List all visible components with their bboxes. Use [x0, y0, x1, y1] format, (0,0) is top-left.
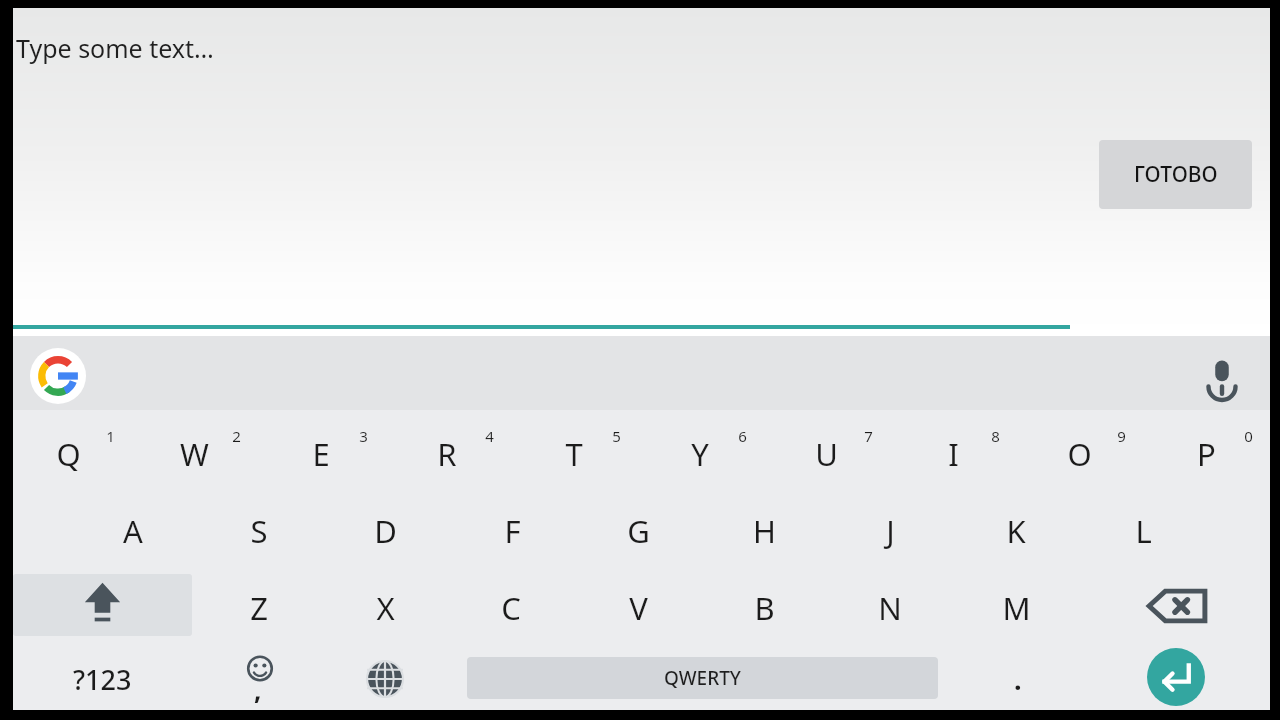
staticText: Y: [691, 433, 709, 475]
button[interactable]: [70, 493, 196, 565]
button[interactable]: [890, 416, 1016, 488]
button[interactable]: Backspace: [1132, 575, 1222, 637]
button[interactable]: QWERTY: [467, 657, 938, 699]
button[interactable]: Enter: [1147, 648, 1205, 706]
button[interactable]: [322, 493, 448, 565]
staticText: H: [753, 510, 776, 552]
staticText: 7: [864, 426, 873, 446]
staticText: T: [565, 433, 583, 475]
button[interactable]: [449, 493, 575, 565]
staticText: K: [1006, 510, 1026, 552]
button[interactable]: [701, 493, 827, 565]
staticText: Z: [250, 587, 268, 629]
staticText: Type some text…: [16, 31, 214, 65]
staticText: 4: [485, 426, 494, 446]
staticText: 5: [612, 426, 621, 446]
staticText: Q: [56, 433, 81, 475]
staticText: B: [754, 587, 775, 629]
button[interactable]: [5, 416, 131, 488]
staticText: W: [180, 433, 209, 475]
staticText: N: [878, 587, 902, 629]
staticText: 2: [232, 426, 241, 446]
button[interactable]: [1143, 416, 1269, 488]
staticText: L: [1135, 510, 1152, 552]
button[interactable]: [258, 416, 384, 488]
staticText: D: [374, 510, 397, 552]
staticText: 6: [738, 426, 747, 446]
staticText: J: [886, 510, 895, 552]
button[interactable]: [575, 493, 701, 565]
staticText: U: [815, 433, 838, 475]
button[interactable]: [13, 8, 1270, 336]
button[interactable]: [384, 416, 510, 488]
staticText: F: [504, 510, 521, 552]
button[interactable]: [1016, 416, 1142, 488]
staticText: X: [376, 587, 395, 629]
button[interactable]: [953, 570, 1079, 642]
button[interactable]: [511, 416, 637, 488]
staticText: M: [1002, 587, 1031, 629]
button[interactable]: [448, 570, 574, 642]
staticText: V: [629, 587, 648, 629]
button[interactable]: [953, 493, 1079, 565]
staticText: ,: [254, 672, 262, 707]
button[interactable]: [701, 570, 827, 642]
button[interactable]: Shift: [13, 574, 192, 636]
button[interactable]: Voice input: [1196, 350, 1248, 402]
staticText: I: [948, 433, 959, 475]
button[interactable]: .: [978, 648, 1058, 710]
staticText: 1: [106, 426, 115, 446]
staticText: O: [1067, 433, 1092, 475]
button[interactable]: [322, 570, 448, 642]
staticText: G: [627, 510, 650, 552]
button[interactable]: [196, 493, 322, 565]
button[interactable]: Google: [30, 348, 86, 404]
button[interactable]: Emoji: [210, 648, 310, 710]
staticText: A: [123, 510, 143, 552]
button[interactable]: ГОТОВО: [1099, 140, 1252, 209]
staticText: R: [437, 433, 457, 475]
staticText: E: [312, 433, 330, 475]
button[interactable]: [196, 570, 322, 642]
button[interactable]: [827, 493, 953, 565]
staticText: P: [1197, 433, 1216, 475]
button[interactable]: Change language: [340, 648, 430, 710]
button[interactable]: ?123: [40, 648, 164, 710]
staticText: 9: [1117, 426, 1126, 446]
button[interactable]: [1080, 493, 1206, 565]
staticText: ГОТОВО: [1134, 160, 1218, 189]
staticText: ?123: [73, 661, 132, 698]
staticText: 8: [991, 426, 1000, 446]
button[interactable]: [763, 416, 889, 488]
button[interactable]: [131, 416, 257, 488]
staticText: S: [250, 510, 268, 552]
button[interactable]: [637, 416, 763, 488]
staticText: .: [1014, 661, 1022, 698]
staticText: C: [501, 587, 521, 629]
button[interactable]: [575, 570, 701, 642]
staticText: QWERTY: [664, 665, 741, 691]
staticText: 3: [359, 426, 368, 446]
button[interactable]: [827, 570, 953, 642]
staticText: 0: [1244, 426, 1253, 446]
